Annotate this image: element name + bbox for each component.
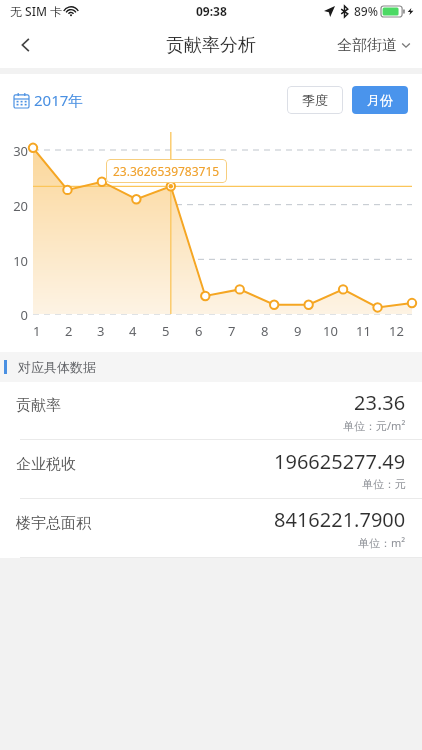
staticText: 11: [356, 322, 371, 340]
button[interactable]: 贡献率: [0, 382, 422, 439]
staticText: 23.36: [354, 389, 406, 416]
staticText: 企业税收: [16, 455, 76, 474]
button[interactable]: 2017年: [14, 90, 84, 110]
staticText: 5: [162, 322, 170, 340]
staticText: 6: [195, 322, 203, 340]
staticText: 30: [0, 142, 28, 160]
staticText: 全部街道: [337, 36, 397, 55]
button[interactable]: 楼宇总面积: [0, 499, 422, 557]
staticText: 09:38: [196, 3, 227, 19]
staticText: 0: [0, 306, 28, 324]
staticText: 3: [97, 322, 105, 340]
staticText: 贡献率: [16, 396, 61, 415]
staticText: 20: [0, 197, 28, 215]
staticText: 对应具体数据: [18, 359, 96, 375]
staticText: 2017年: [34, 90, 84, 110]
staticText: 楼宇总面积: [16, 514, 91, 533]
staticText: 23.3626539783715: [113, 163, 220, 179]
staticText: 单位：元/m²: [343, 418, 406, 433]
staticText: 9: [294, 322, 302, 340]
staticText: 单位：m²: [358, 535, 406, 550]
staticText: 单位：元: [362, 477, 406, 491]
button[interactable]: 企业税收: [0, 440, 422, 498]
staticText: 季度: [302, 92, 328, 108]
button[interactable]: 全部街道: [337, 22, 422, 68]
staticText: 10: [0, 252, 28, 270]
staticText: 4: [129, 322, 137, 340]
staticText: 贡献率分析: [166, 34, 256, 57]
staticText: 8416221.7900: [274, 506, 406, 533]
button[interactable]: Back: [0, 22, 52, 68]
staticText: 2: [65, 322, 73, 340]
staticText: 12: [389, 322, 404, 340]
staticText: 7: [228, 322, 236, 340]
button[interactable]: 月份: [352, 86, 408, 114]
staticText: 1: [33, 322, 41, 340]
staticText: 10: [323, 322, 338, 340]
staticText: 196625277.49: [274, 448, 406, 475]
staticText: 月份: [367, 92, 393, 108]
staticText: 89%: [354, 3, 378, 19]
staticText: 无 SIM 卡: [10, 3, 63, 19]
staticText: 8: [261, 322, 269, 340]
button[interactable]: 季度: [287, 86, 343, 114]
